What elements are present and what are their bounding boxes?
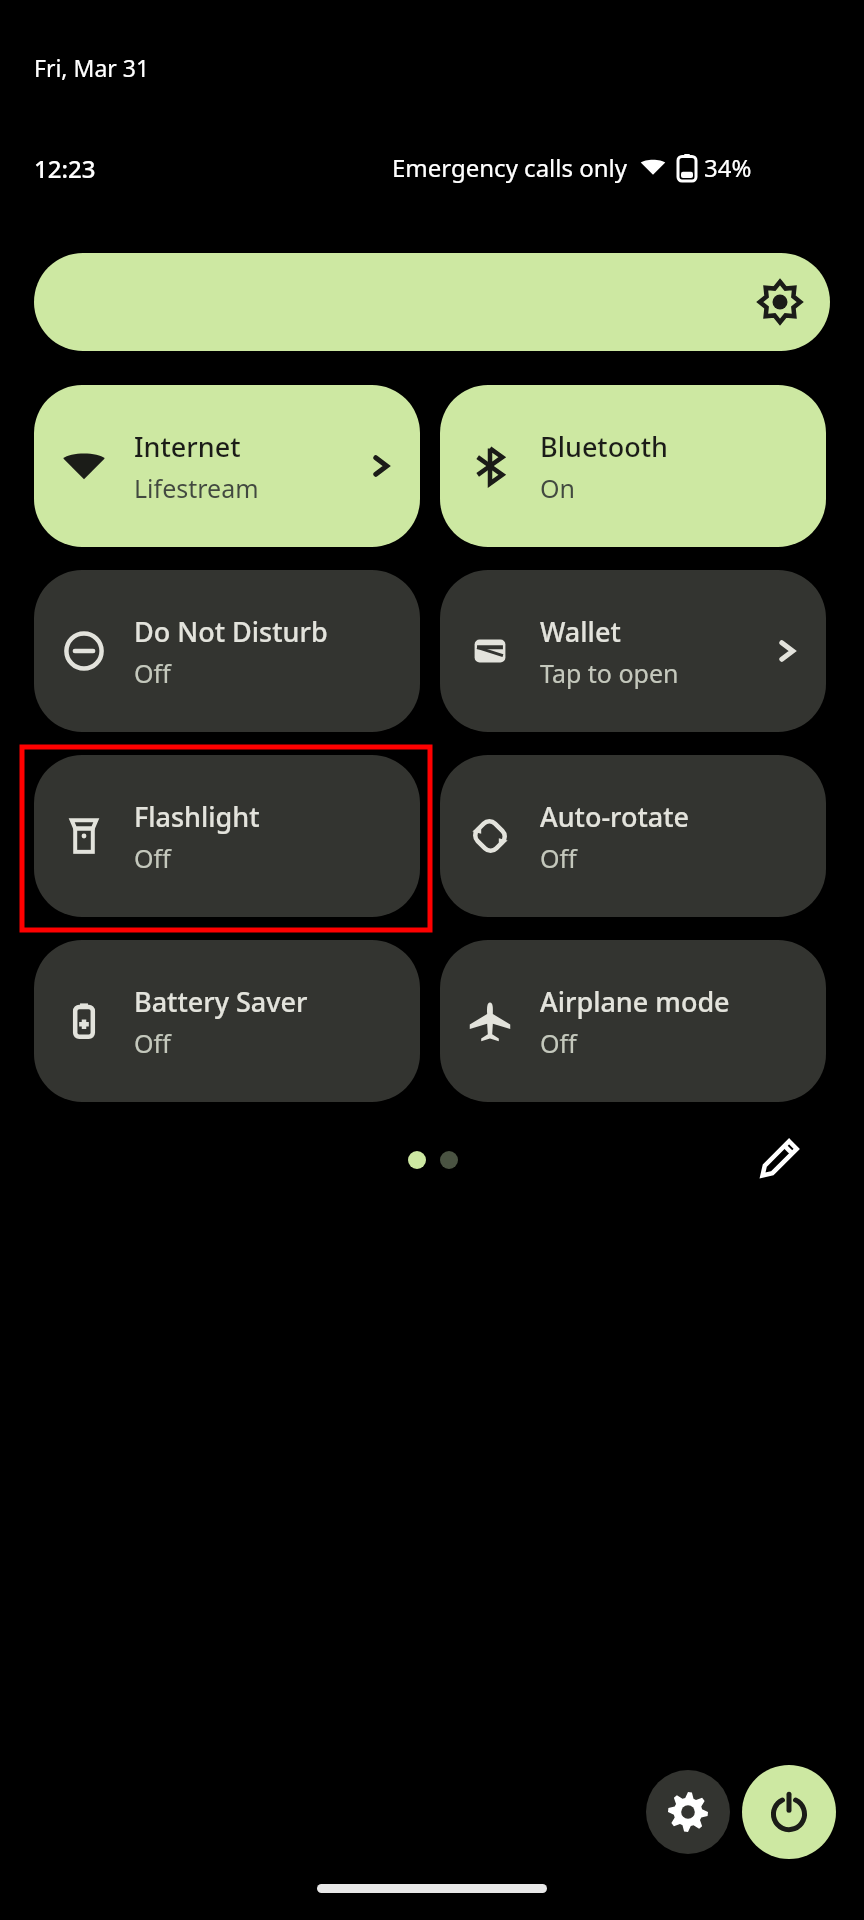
button[interactable]: Edit tiles [750,1128,810,1188]
staticText: Auto-rotate [540,798,690,835]
staticText: Internet [134,428,241,465]
button[interactable]: Flashlight [34,755,420,917]
staticText: Battery Saver [134,983,308,1020]
staticText: Lifestream [134,471,259,505]
staticText: On [540,471,575,505]
staticText: Off [540,1026,577,1060]
staticText: Fri, Mar 31 [34,52,150,83]
button[interactable]: Internet [34,385,420,547]
staticText: Airplane mode [540,983,730,1020]
staticText: Bluetooth [540,428,668,465]
staticText: Flashlight [134,798,260,835]
staticText: 34% [704,151,752,184]
button[interactable]: Power [742,1765,836,1859]
staticText: Do Not Disturb [134,613,328,650]
button[interactable]: Battery Saver [34,940,420,1102]
button[interactable]: Settings [646,1770,730,1854]
staticText: Off [134,1026,171,1060]
button[interactable]: Airplane mode [440,940,826,1102]
staticText: Off [540,841,577,875]
button[interactable]: Brightness [34,253,830,351]
button[interactable]: Wallet [440,570,826,732]
staticText: Off [134,841,171,875]
staticText: 12:23 [34,152,96,185]
staticText: Off [134,656,171,690]
staticText: Wallet [540,613,621,650]
button[interactable]: Bluetooth [440,385,826,547]
staticText: Tap to open [540,656,679,690]
staticText: Emergency calls only [392,151,628,184]
button[interactable]: Auto-rotate [440,755,826,917]
button[interactable]: Do Not Disturb [34,570,420,732]
